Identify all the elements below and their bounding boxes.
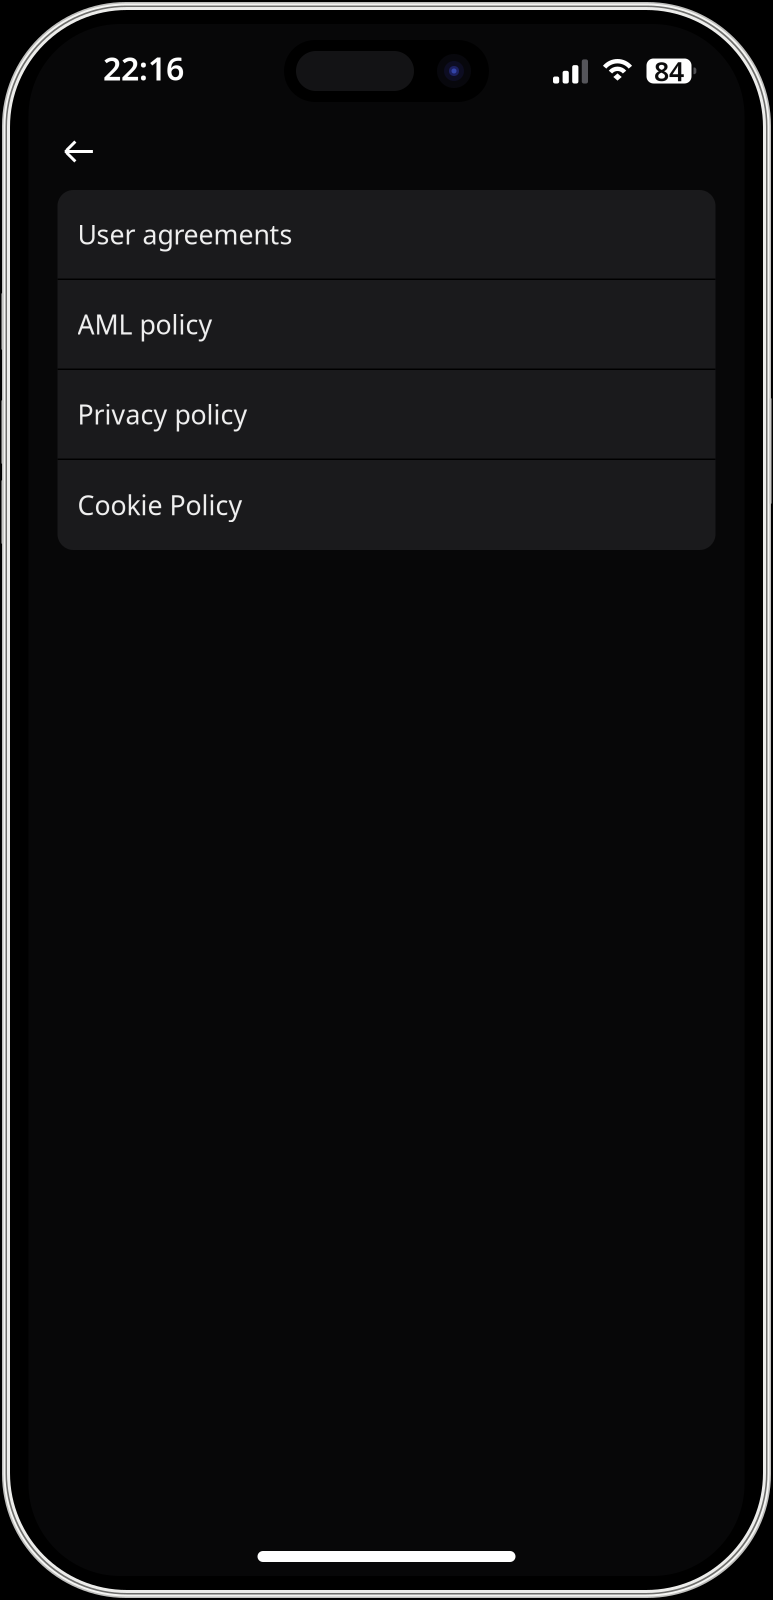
staticText: Cookie Policy [77,487,242,523]
staticText: Privacy policy [77,396,247,432]
staticText: User agreements [77,216,292,252]
button[interactable]: User agreements [57,190,715,280]
staticText: 84 [654,53,684,89]
staticText: 22:16 [103,47,184,89]
staticText: AML policy [77,306,212,342]
button[interactable]: AML policy [57,280,715,370]
button[interactable]: Back [48,124,108,180]
button[interactable]: Privacy policy [57,370,715,460]
button[interactable]: Cookie Policy [57,460,715,550]
